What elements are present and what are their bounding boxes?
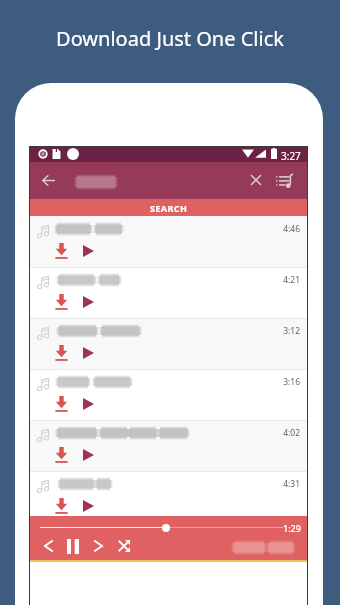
button[interactable]: Play <box>77 393 99 415</box>
staticText: 3:27 <box>281 149 301 163</box>
button[interactable]: Play <box>77 291 99 313</box>
staticText: 3:16 <box>270 376 300 388</box>
staticText: 3:12 <box>270 325 300 337</box>
button[interactable]: 4:46 <box>30 216 307 267</box>
staticText: 1:29 <box>283 522 301 534</box>
button[interactable]: Download <box>50 240 72 262</box>
staticText: 4:46 <box>270 223 300 235</box>
button[interactable]: Play <box>77 342 99 364</box>
button[interactable]: Download <box>50 495 72 517</box>
button[interactable]: 4:21 <box>30 267 307 318</box>
staticText: Download Just One Click <box>56 25 284 52</box>
button[interactable]: Download <box>50 342 72 364</box>
staticText: SEARCH <box>150 202 188 214</box>
button[interactable]: Shuffle <box>113 535 135 557</box>
button[interactable]: 4:02 <box>30 420 307 471</box>
button[interactable]: Download <box>50 291 72 313</box>
button[interactable]: Download <box>50 393 72 415</box>
button[interactable]: Play <box>77 240 99 262</box>
button[interactable]: Clear search <box>243 167 268 192</box>
staticText: 4:02 <box>270 427 300 439</box>
staticText: 4:21 <box>270 274 300 286</box>
button[interactable]: Next <box>87 535 109 557</box>
button[interactable]: 3:16 <box>30 369 307 420</box>
button[interactable]: Download <box>50 444 72 466</box>
button[interactable]: Play <box>77 444 99 466</box>
button[interactable]: Playlist queue <box>270 167 298 195</box>
button[interactable]: Back <box>36 168 61 193</box>
button[interactable]: 4:31 <box>30 471 307 522</box>
staticText: 4:31 <box>270 478 300 490</box>
button[interactable]: 3:12 <box>30 318 307 369</box>
button[interactable]: Previous <box>37 535 59 557</box>
button[interactable]: SEARCH <box>30 199 307 216</box>
button[interactable]: Pause <box>62 535 84 557</box>
button[interactable]: Play <box>77 495 99 517</box>
